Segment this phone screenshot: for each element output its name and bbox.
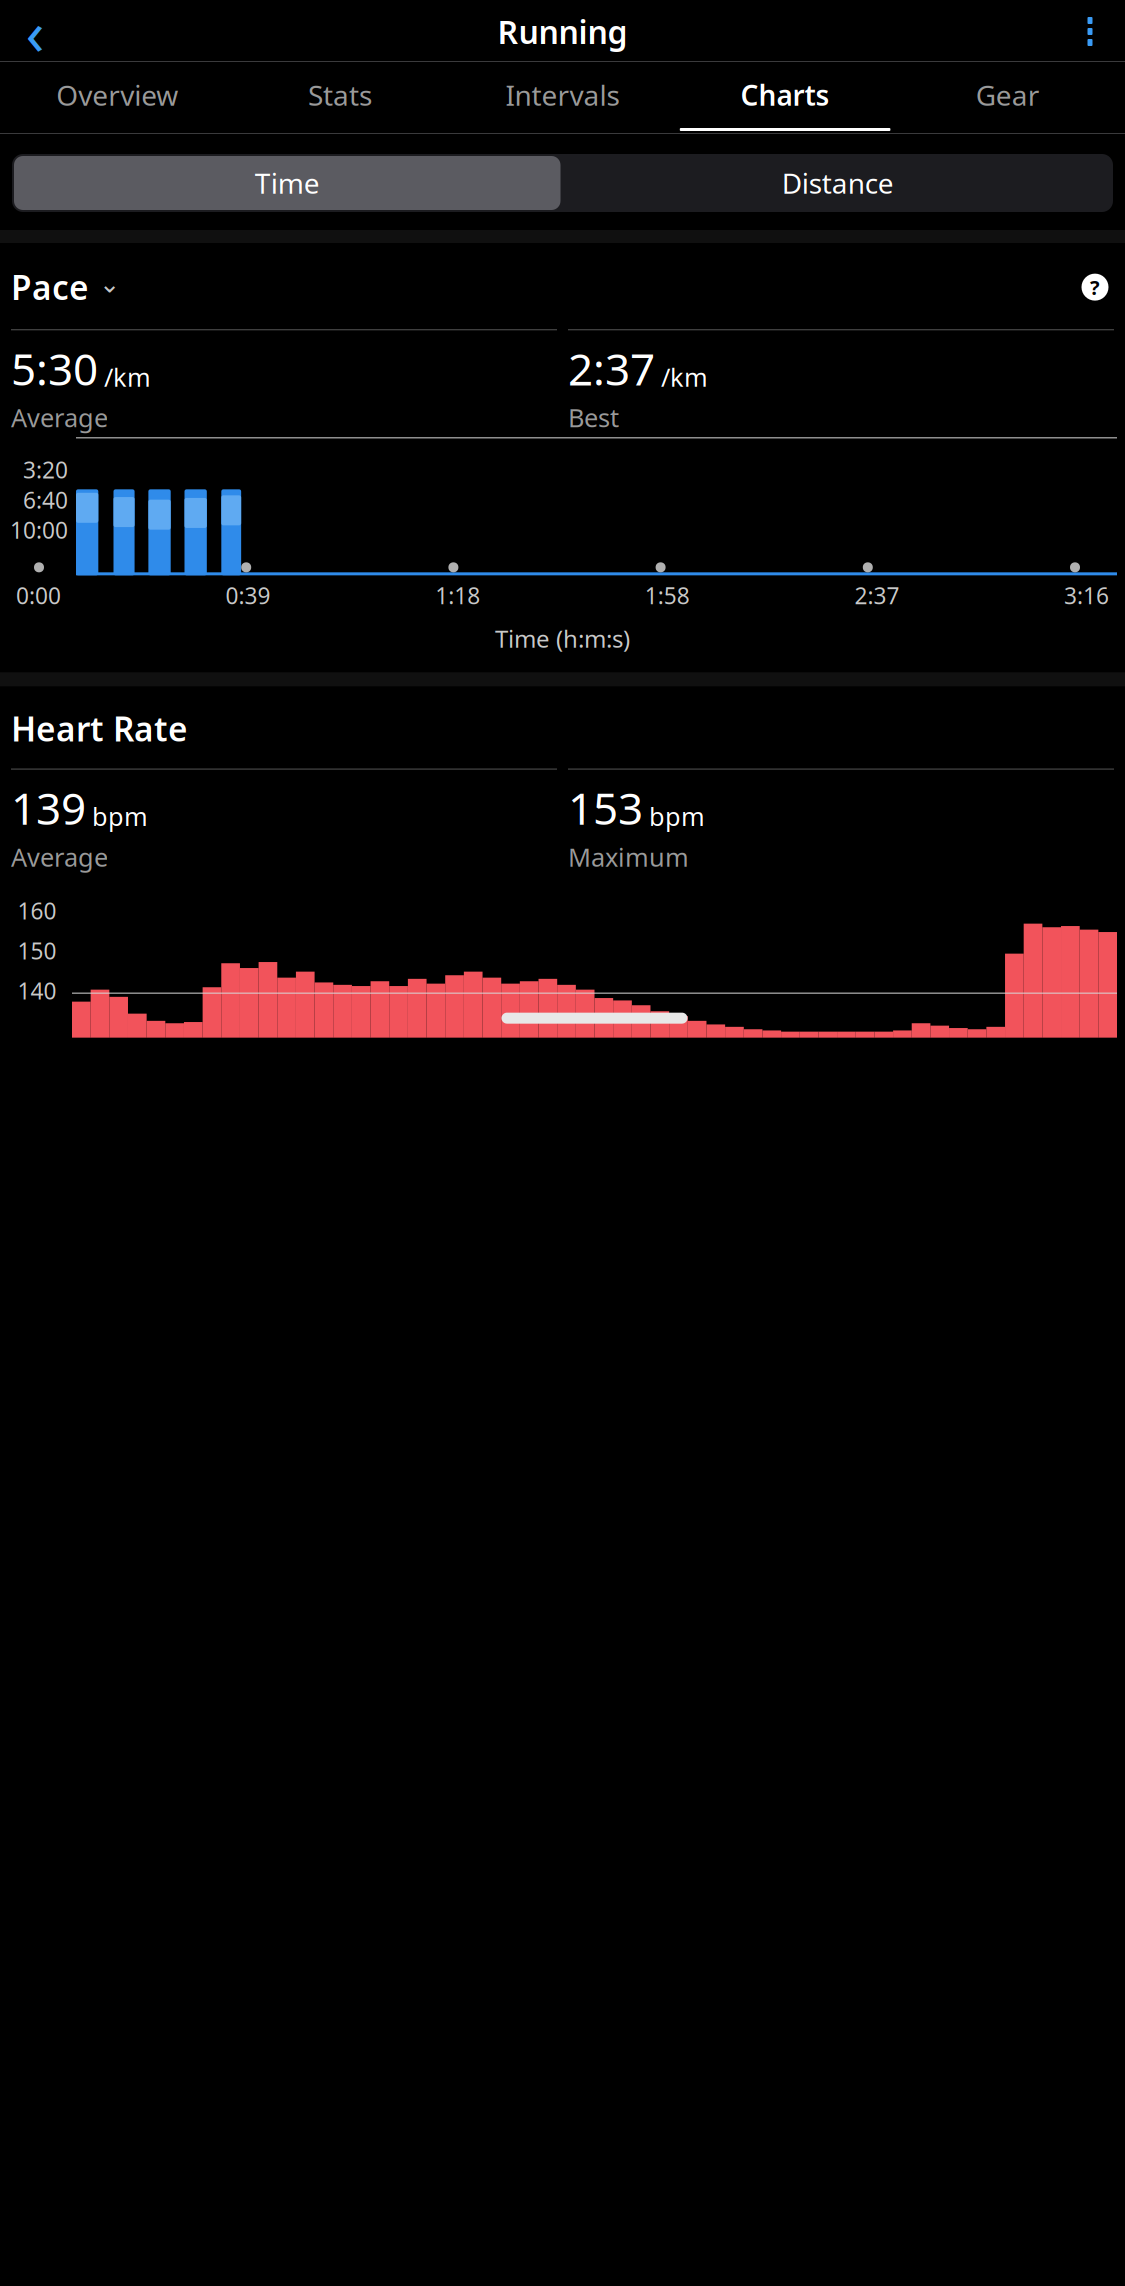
staticText: 140 [17,976,56,1006]
staticText: 0:00 [16,580,61,610]
staticText: ? [1090,274,1100,300]
staticText: Gear [976,76,1040,114]
staticText: Time [255,164,320,202]
staticText: 2:37 [854,580,899,610]
staticText: Pace [11,265,89,309]
staticText: Best [568,401,619,434]
staticText: Average [11,401,108,434]
staticText: /km [104,360,151,394]
staticText: Charts [741,76,830,114]
button[interactable]: Charts [674,62,896,133]
button[interactable]: Back [8,4,62,58]
staticText: ⌄ [99,269,120,298]
staticText: 160 [17,896,56,926]
staticText: Intervals [505,76,619,114]
button[interactable]: Intervals [451,62,674,133]
staticText: /km [661,360,708,394]
button[interactable]: Pace [11,261,120,313]
button[interactable]: Help about pace [1076,268,1114,306]
staticText: Average [11,840,108,874]
staticText: Heart Rate [11,706,188,751]
button[interactable]: Overview [6,62,229,133]
staticText: Stats [308,76,372,114]
staticText: Running [497,10,627,53]
staticText: 2:37 [568,339,655,398]
button[interactable]: More options [1063,4,1117,58]
button[interactable]: Time [12,154,562,212]
staticText: 3:20 [23,455,68,485]
staticText: 153 [568,779,643,837]
staticText: 6:40 [23,485,68,515]
button[interactable]: Gear [896,62,1119,133]
staticText: 0:39 [226,580,271,610]
staticText: bpm [92,799,148,833]
staticText: 10:00 [10,515,68,545]
staticText: 1:58 [645,580,690,610]
staticText: Time (h:m:s) [495,622,630,654]
button[interactable]: Distance [562,154,1113,212]
staticText: Overview [56,76,178,114]
staticText: 1:18 [435,580,480,610]
staticText: 139 [11,779,86,837]
staticText: bpm [649,799,705,833]
button[interactable]: Stats [229,62,451,133]
staticText: Maximum [568,840,689,874]
staticText: Distance [782,164,894,202]
staticText: 150 [17,936,56,966]
staticText: 3:16 [1064,580,1109,610]
staticText: ‹ [25,0,44,72]
staticText: 5:30 [11,339,98,398]
